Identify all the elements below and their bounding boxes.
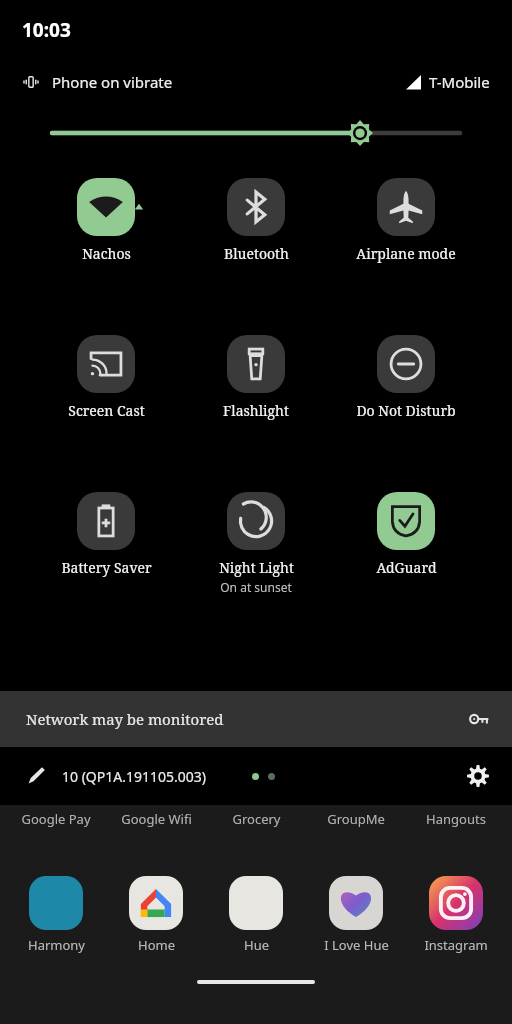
button[interactable]: Screen Cast <box>31 335 181 420</box>
staticText: Bluetooth <box>224 244 289 263</box>
staticText: Google Wifi <box>121 810 192 828</box>
staticText: Nachos <box>82 244 131 263</box>
button[interactable]: Home <box>110 876 202 954</box>
button[interactable]: Battery Saver <box>31 492 181 577</box>
staticText: Home <box>138 936 175 954</box>
button[interactable]: Hue <box>210 876 302 954</box>
button[interactable]: Edit <box>26 766 206 786</box>
staticText: 10:03 <box>22 17 71 43</box>
button[interactable]: Do Not Disturb <box>331 335 481 420</box>
button[interactable]: Night Light <box>181 492 331 595</box>
staticText: Do Not Disturb <box>356 401 456 420</box>
other: Edit <box>26 766 46 786</box>
button[interactable]: AdGuard <box>331 492 481 577</box>
button[interactable]: I Love Hue <box>310 876 402 954</box>
staticText: Flashlight <box>223 401 289 420</box>
button[interactable]: Network may be monitored <box>0 691 512 747</box>
staticText: Instagram <box>424 936 488 954</box>
staticText: I Love Hue <box>324 936 389 954</box>
button[interactable]: Nachos <box>31 178 181 263</box>
button[interactable]: Instagram <box>410 876 502 954</box>
staticText: Grocery <box>232 810 281 828</box>
button[interactable]: Phone on vibrate <box>22 72 173 92</box>
staticText: Network may be monitored <box>26 709 224 729</box>
staticText: Google Pay <box>21 810 91 828</box>
staticText: AdGuard <box>376 558 437 577</box>
staticText: Hue <box>244 936 269 954</box>
staticText: GroupMe <box>327 810 385 828</box>
button[interactable]: Brightness <box>0 104 512 160</box>
staticText: Hangouts <box>426 810 486 828</box>
button[interactable]: Airplane mode <box>331 178 481 263</box>
staticText: Harmony <box>28 936 85 954</box>
button[interactable]: Flashlight <box>181 335 331 420</box>
staticText: Night Light <box>219 558 294 577</box>
button[interactable]: Bluetooth <box>181 178 331 263</box>
staticText: Phone on vibrate <box>52 72 173 92</box>
staticText: On at sunset <box>220 579 292 595</box>
button[interactable]: Settings <box>466 764 490 788</box>
staticText: T-Mobile <box>429 72 490 92</box>
staticText: 10 (QP1A.191105.003) <box>62 767 206 786</box>
other: VPN <box>468 708 490 730</box>
staticText: Screen Cast <box>68 401 145 420</box>
staticText: Airplane mode <box>356 244 456 263</box>
button[interactable]: Harmony <box>10 876 102 954</box>
staticText: Battery Saver <box>61 558 152 577</box>
other: Phone on vibrate <box>22 73 40 91</box>
